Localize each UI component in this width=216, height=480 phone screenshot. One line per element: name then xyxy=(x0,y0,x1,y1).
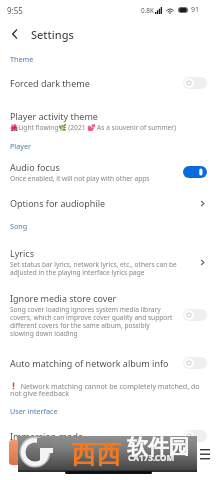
button[interactable]: Audio focus xyxy=(0,161,216,183)
button[interactable]: Back xyxy=(3,22,27,46)
button[interactable]: Auto matching of network album info xyxy=(0,357,216,369)
button[interactable]: Forced dark theme xyxy=(0,77,216,89)
staticText: 🌺Light flowing🌿 (2021 💕 As a souvenir of… xyxy=(10,123,177,132)
button[interactable]: Ignore media store cover xyxy=(0,292,216,338)
staticText: 0.8K xyxy=(141,6,154,15)
staticText: Audio focus xyxy=(10,161,60,173)
staticText: Player xyxy=(10,141,31,151)
staticText: Once enabled, it will not play with othe… xyxy=(10,174,150,183)
staticText: Network matching cannot be completely ma… xyxy=(10,381,200,399)
staticText: Settings xyxy=(31,27,74,42)
button[interactable]: Immersion mode xyxy=(0,430,216,442)
button[interactable]: Toggle xyxy=(183,357,207,369)
staticText: CA173.COM xyxy=(128,452,175,463)
staticText: Set status bar lyrics, network lyrics, e… xyxy=(10,260,177,277)
staticText: Player activity theme xyxy=(10,110,98,122)
staticText: Song cover loading ignores system media … xyxy=(10,305,173,338)
staticText: Immersion mode xyxy=(10,430,84,442)
button[interactable]: Lyrics xyxy=(0,247,216,277)
staticText: User interface xyxy=(10,406,58,416)
button[interactable]: Toggle xyxy=(183,430,207,442)
staticText: 91 xyxy=(191,5,200,15)
staticText: 软件园 xyxy=(127,434,190,460)
button[interactable]: Toggle xyxy=(183,309,207,321)
staticText: Ignore media store cover xyxy=(10,292,117,304)
staticText: Lyrics xyxy=(10,247,34,259)
button[interactable]: Toggle xyxy=(183,77,207,89)
staticText: Auto matching of network album info xyxy=(10,357,169,369)
staticText: Options for audiophile xyxy=(10,197,106,209)
staticText: Forced dark theme xyxy=(10,77,90,89)
staticText: Theme xyxy=(10,54,34,64)
button[interactable]: Toggle xyxy=(183,166,207,178)
button[interactable]: Options for audiophile xyxy=(0,197,216,209)
staticText: 9:55 xyxy=(7,5,23,16)
staticText: Song xyxy=(10,221,28,231)
button[interactable]: Player activity theme xyxy=(0,110,216,132)
staticText: 西西 xyxy=(71,439,121,470)
